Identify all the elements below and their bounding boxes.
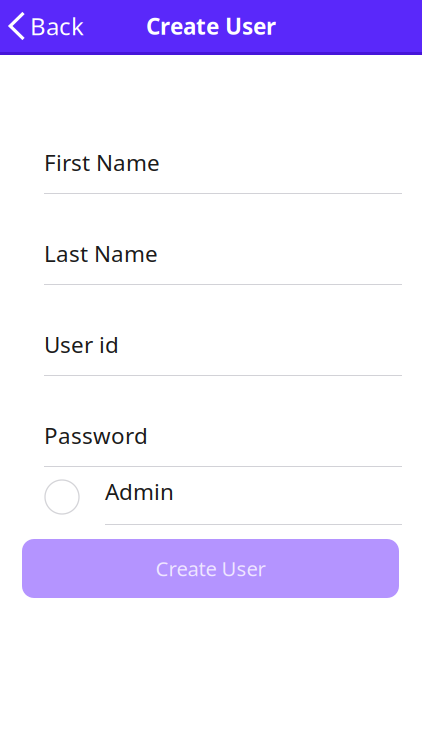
staticText: User id — [44, 329, 119, 359]
staticText: First Name — [44, 147, 160, 177]
button[interactable]: Back — [0, 4, 92, 48]
staticText: Admin — [105, 476, 174, 506]
button[interactable]: First Name — [44, 147, 402, 194]
button[interactable]: Last Name — [44, 238, 402, 285]
staticText: Create User — [146, 11, 276, 41]
button[interactable]: Admin — [44, 467, 79, 525]
staticText: Last Name — [44, 238, 158, 268]
staticText: Back — [30, 10, 84, 42]
staticText: Password — [44, 420, 148, 450]
button[interactable]: User id — [44, 329, 402, 376]
button[interactable]: Create User — [22, 539, 399, 598]
button[interactable]: Admin — [105, 467, 402, 525]
button[interactable]: Password — [44, 420, 402, 467]
staticText: Create User — [155, 555, 265, 582]
